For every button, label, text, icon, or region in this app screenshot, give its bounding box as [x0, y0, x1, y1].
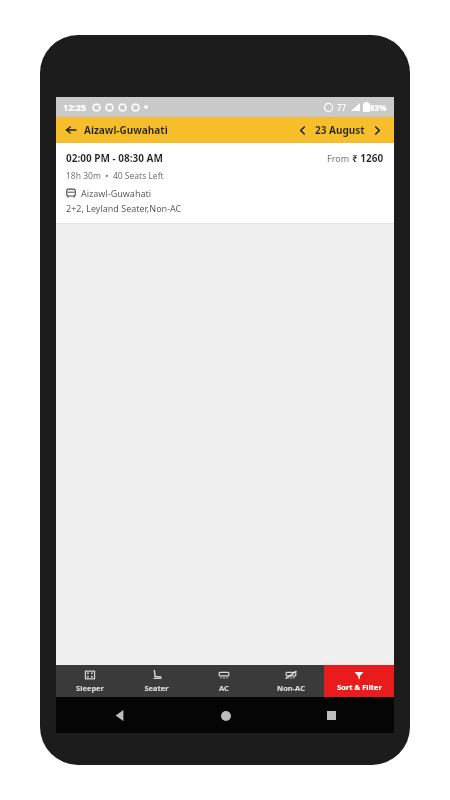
staticText: Non-AC	[277, 683, 305, 693]
staticText: Sort & Filter	[337, 682, 382, 692]
button[interactable]: Back	[64, 122, 78, 138]
staticText: 02:00 PM - 08:30 AM	[66, 151, 163, 165]
button[interactable]: Seater	[123, 665, 190, 697]
staticText: Aizawl-Guwahati	[84, 123, 168, 137]
button[interactable]: Sort & Filter	[324, 665, 394, 697]
staticText: Aizawl-Guwahati	[81, 187, 152, 199]
staticText: 23 August	[315, 123, 365, 137]
button[interactable]: Recents	[321, 705, 342, 726]
staticText: ₹ 1260	[352, 151, 384, 165]
button[interactable]: Next day	[369, 123, 386, 138]
staticText: 77	[337, 102, 347, 113]
button[interactable]: Non-AC	[257, 665, 324, 697]
button[interactable]: 02:00 PM - 08:30 AM	[56, 143, 394, 223]
staticText: AC	[219, 683, 229, 693]
staticText: 12:25	[63, 101, 87, 113]
staticText: 2+2, Leyland Seater,Non-AC	[66, 202, 182, 214]
button[interactable]: Previous day	[294, 123, 311, 138]
staticText: 18h 30m • 40 Seats Left	[66, 170, 164, 182]
staticText: From	[327, 152, 352, 164]
button[interactable]: Back	[108, 704, 131, 727]
button[interactable]: AC	[190, 665, 257, 697]
staticText: Seater	[144, 683, 169, 693]
button[interactable]: Sleeper	[56, 665, 123, 697]
staticText: Sleeper	[76, 683, 104, 693]
staticText: 83%	[370, 102, 387, 113]
button[interactable]: Home	[215, 705, 237, 727]
